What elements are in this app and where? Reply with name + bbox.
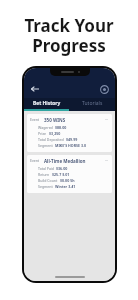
button[interactable]: Event: [27, 155, 112, 193]
staticText: Build Count: [38, 178, 58, 183]
staticText: All-Time Medallion: [44, 158, 86, 164]
staticText: $3,250: [49, 131, 61, 136]
staticText: Total Deposited: [38, 137, 64, 142]
staticText: $25.7 $.01: [52, 172, 70, 177]
staticText: Return: [38, 172, 50, 177]
staticText: Segment: [38, 184, 53, 189]
staticText: Prize: [38, 131, 47, 136]
staticText: ···: [105, 117, 109, 122]
staticText: $88.00: [55, 125, 67, 130]
staticText: Tutorials: [82, 100, 103, 107]
staticText: Total Paid: [38, 166, 54, 171]
button[interactable]: Tutorials: [69, 98, 115, 109]
staticText: $36.00: [56, 166, 68, 171]
button[interactable]: Back: [29, 83, 41, 95]
button[interactable]: Settings: [98, 83, 110, 95]
button[interactable]: Bet History: [24, 98, 69, 109]
staticText: ···: [105, 158, 109, 163]
staticText: Bet History: [33, 100, 61, 107]
staticText: MIKE'S HORSE 3.0: [55, 143, 87, 148]
staticText: Segment: [38, 143, 53, 148]
staticText: 350 WINS: [44, 117, 66, 123]
staticText: Wagered: [38, 125, 53, 130]
staticText: Track Your Progress: [24, 14, 114, 57]
staticText: Winter 3.41: [55, 184, 76, 189]
staticText: Event: [30, 158, 40, 163]
staticText: $0.00 5h: [60, 178, 75, 183]
staticText: $49.99: [66, 137, 78, 142]
staticText: Event: [30, 117, 40, 122]
button[interactable]: Event: [27, 114, 112, 152]
